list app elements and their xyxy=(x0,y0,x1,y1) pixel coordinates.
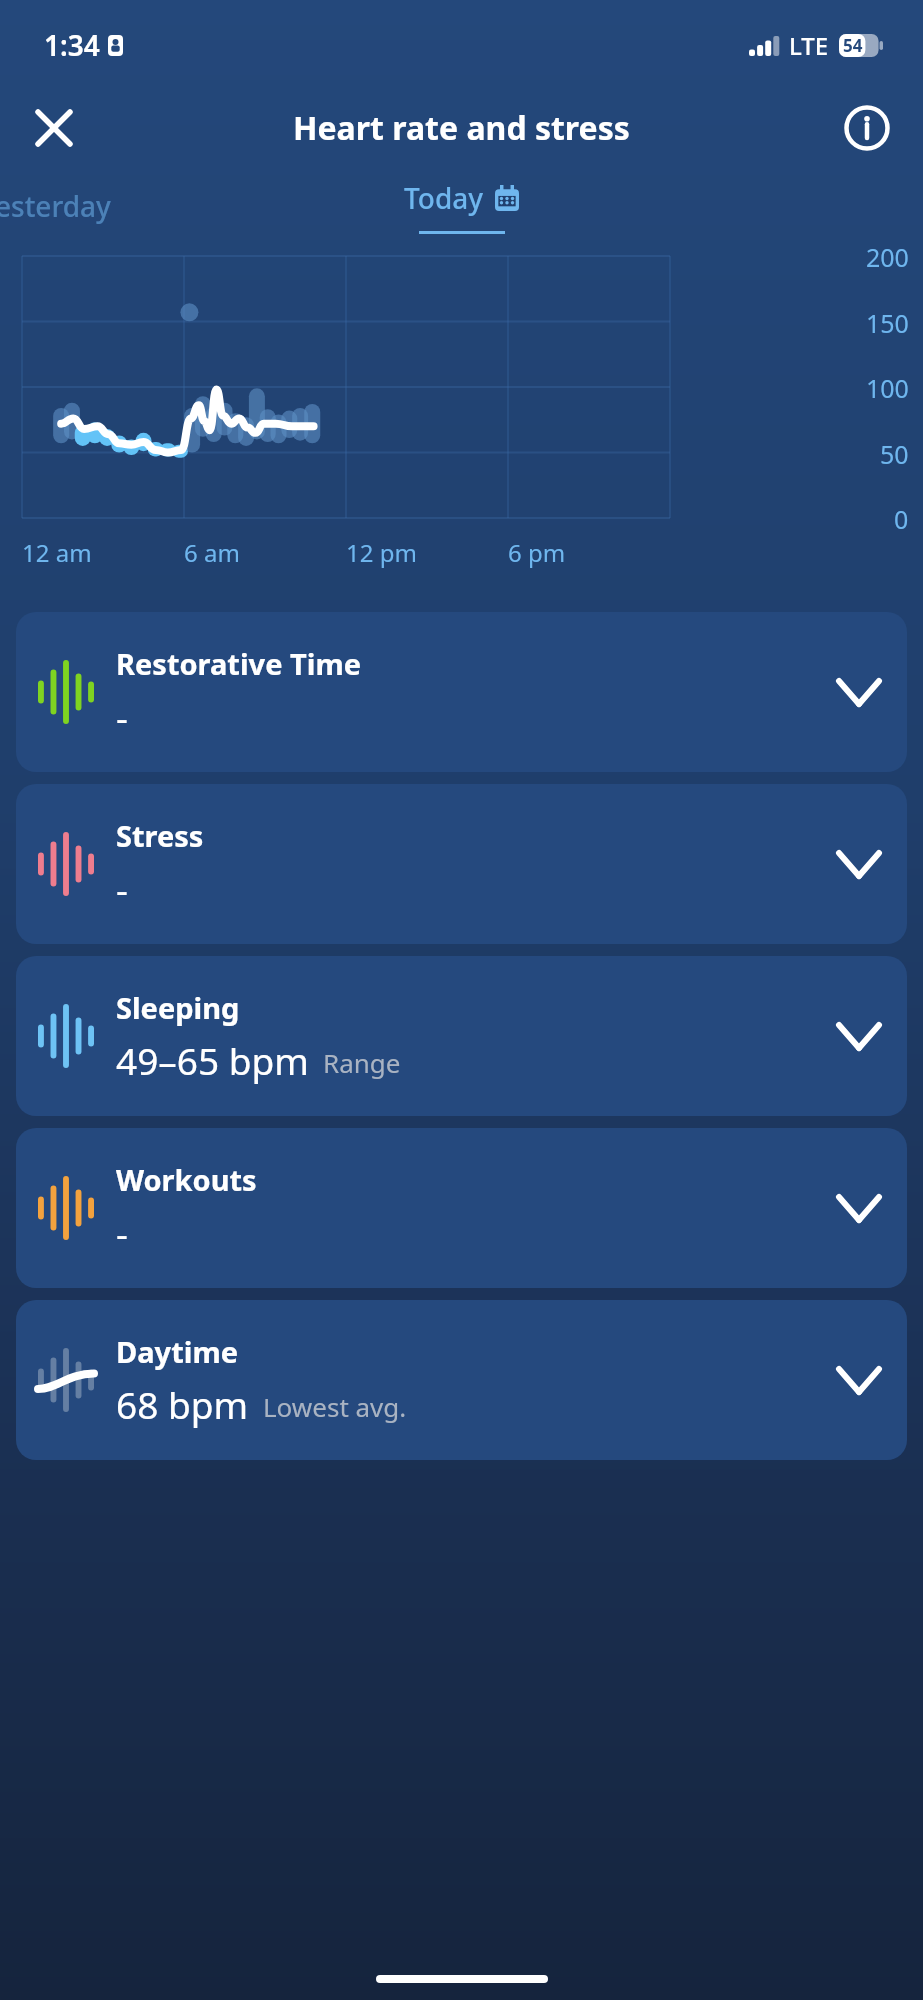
button[interactable]: Expand Workouts xyxy=(811,1128,907,1288)
button[interactable]: Expand Stress xyxy=(811,784,907,944)
button[interactable]: Today xyxy=(404,179,519,234)
staticText: Daytime xyxy=(116,1332,239,1371)
staticText: 68 bpm xyxy=(116,1379,249,1429)
staticText: Workouts xyxy=(116,1160,257,1199)
staticText: - xyxy=(116,1207,128,1257)
staticText: 6 pm xyxy=(508,536,566,569)
staticText: 50 xyxy=(880,437,909,471)
button[interactable]: Close xyxy=(26,100,82,156)
staticText: 54 xyxy=(843,34,863,57)
staticText: Range xyxy=(323,1045,401,1080)
staticText: Restorative Time xyxy=(116,644,362,683)
staticText: - xyxy=(116,863,128,913)
staticText: 12 am xyxy=(22,536,92,569)
button[interactable]: Expand Restorative Time xyxy=(811,612,907,772)
staticText: - xyxy=(116,691,128,741)
button[interactable]: Daytime xyxy=(16,1300,907,1460)
staticText: 1:34 xyxy=(44,26,100,64)
button[interactable]: Yesterday xyxy=(0,177,123,235)
button[interactable]: Expand Sleeping xyxy=(811,956,907,1116)
staticText: Stress xyxy=(116,816,204,855)
button[interactable]: Expand Daytime xyxy=(811,1300,907,1460)
staticText: Heart rate and stress xyxy=(293,106,630,150)
staticText: 6 am xyxy=(184,536,240,569)
staticText: 0 xyxy=(894,502,909,536)
button[interactable]: Workouts xyxy=(16,1128,907,1288)
button[interactable]: Sleeping xyxy=(16,956,907,1116)
button[interactable]: Information xyxy=(839,100,895,156)
button[interactable]: Restorative Time xyxy=(16,612,907,772)
staticText: 200 xyxy=(866,240,909,274)
staticText: 49–65 bpm xyxy=(116,1035,309,1085)
staticText: Lowest avg. xyxy=(263,1389,407,1424)
staticText: 12 pm xyxy=(346,536,417,569)
staticText: Today xyxy=(404,179,484,217)
staticText: 100 xyxy=(866,371,909,405)
button[interactable]: Stress xyxy=(16,784,907,944)
staticText: LTE xyxy=(789,29,829,62)
staticText: 150 xyxy=(866,306,909,340)
staticText: Sleeping xyxy=(116,988,240,1027)
